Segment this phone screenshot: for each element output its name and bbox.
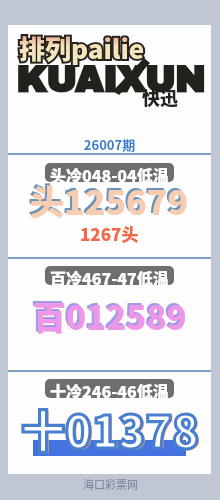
staticText: 十01378: [23, 398, 201, 462]
staticText: KUAIXUN: [16, 60, 205, 99]
staticText: 海口彩票网: [83, 476, 138, 492]
staticText: 头冷048-04低温: [50, 163, 169, 182]
button[interactable]: 十冷246-46低温: [45, 379, 174, 398]
staticText: 十01378: [21, 397, 199, 461]
staticText: 百012589: [33, 292, 187, 340]
staticText: 十01378: [21, 397, 199, 461]
staticText: 十冷246-46低温: [50, 379, 169, 398]
staticText: 排列pailie: [19, 29, 145, 67]
staticText: 排列pailie: [19, 29, 145, 67]
staticText: 26007期: [8, 135, 211, 154]
staticText: 头125679: [30, 176, 189, 225]
button[interactable]: 百冷467-47低温: [45, 266, 174, 285]
staticText: 快迅: [142, 84, 178, 110]
staticText: 1267头: [80, 221, 139, 246]
staticText: 头125679: [28, 174, 187, 223]
staticText: 百012589: [31, 290, 185, 338]
staticText: 百冷467-47低温: [50, 266, 169, 285]
button[interactable]: 头冷048-04低温: [45, 163, 174, 182]
